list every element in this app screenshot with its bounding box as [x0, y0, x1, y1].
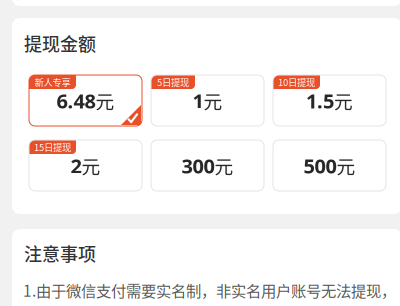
- staticText: 注意事项: [24, 240, 96, 266]
- staticText: 15日提现: [34, 140, 71, 154]
- staticText: 提现金额: [24, 30, 96, 56]
- button[interactable]: 1: [151, 75, 264, 126]
- staticText: 2: [70, 152, 81, 179]
- staticText: 元: [334, 87, 353, 114]
- staticText: 300: [181, 152, 214, 179]
- staticText: 元: [95, 87, 114, 114]
- button[interactable]: 500: [273, 140, 386, 191]
- button[interactable]: 1.5: [273, 75, 386, 126]
- staticText: 500: [303, 152, 336, 179]
- button[interactable]: 6.48: [29, 75, 142, 126]
- staticText: 元: [81, 152, 100, 179]
- staticText: 5日提现: [157, 75, 189, 89]
- staticText: 新人专享: [34, 75, 70, 89]
- staticText: 元: [214, 152, 233, 179]
- staticText: 1.5: [306, 87, 334, 114]
- staticText: 6.48: [56, 87, 95, 114]
- staticText: 元: [203, 87, 222, 114]
- staticText: 1: [192, 87, 203, 114]
- button[interactable]: 2: [29, 140, 142, 191]
- button[interactable]: 300: [151, 140, 264, 191]
- staticText: 元: [336, 152, 355, 179]
- staticText: 1.由于微信支付需要实名制，非实名用户账号无法提现，请先完成实名认证后再申请提现…: [23, 279, 396, 306]
- staticText: 10日提现: [278, 75, 315, 89]
